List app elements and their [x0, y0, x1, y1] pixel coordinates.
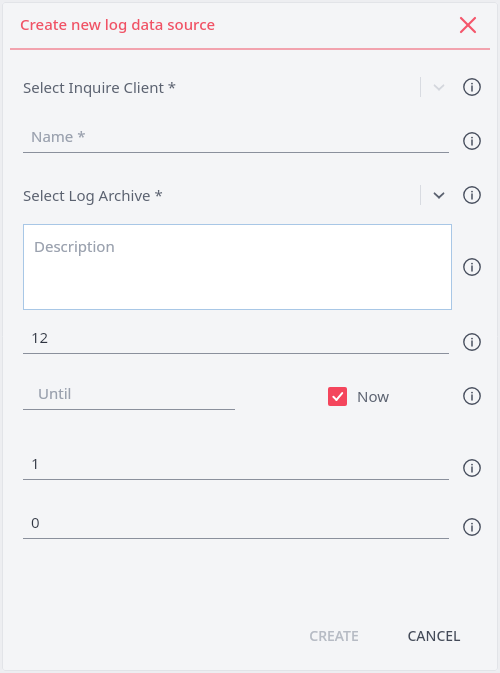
- button[interactable]: Close: [454, 11, 482, 39]
- button[interactable]: CANCEL: [395, 618, 473, 653]
- button[interactable]: Info: [459, 455, 485, 481]
- button[interactable]: Info: [459, 74, 485, 100]
- staticText: Description: [34, 236, 115, 256]
- button[interactable]: Until: [2, 373, 242, 423]
- staticText: Now: [357, 386, 389, 406]
- staticText: 0: [31, 512, 40, 532]
- staticText: 12: [31, 327, 49, 347]
- staticText: Create new log data source: [20, 14, 216, 34]
- button[interactable]: CREATE: [297, 618, 371, 653]
- button[interactable]: Info: [459, 383, 485, 409]
- staticText: Select Log Archive *: [23, 185, 163, 205]
- button[interactable]: Info: [459, 514, 485, 540]
- button[interactable]: Select Log Archive *: [23, 168, 446, 222]
- button[interactable]: Now: [328, 386, 389, 406]
- staticText: Select Inquire Client *: [23, 77, 177, 97]
- staticText: CREATE: [309, 626, 359, 645]
- button[interactable]: 1: [2, 441, 446, 495]
- staticText: CANCEL: [407, 626, 461, 645]
- button[interactable]: Info: [459, 254, 485, 280]
- button[interactable]: Name *: [2, 114, 446, 168]
- staticText: Name *: [31, 126, 86, 146]
- staticText: 1: [31, 453, 40, 473]
- button[interactable]: Info: [459, 182, 485, 208]
- button[interactable]: Description: [23, 224, 452, 310]
- button[interactable]: 0: [2, 500, 446, 554]
- button[interactable]: 12: [2, 315, 446, 369]
- staticText: Until: [38, 383, 72, 403]
- button[interactable]: Info: [459, 128, 485, 154]
- button[interactable]: Select Inquire Client *: [23, 60, 446, 114]
- button[interactable]: Info: [459, 329, 485, 355]
